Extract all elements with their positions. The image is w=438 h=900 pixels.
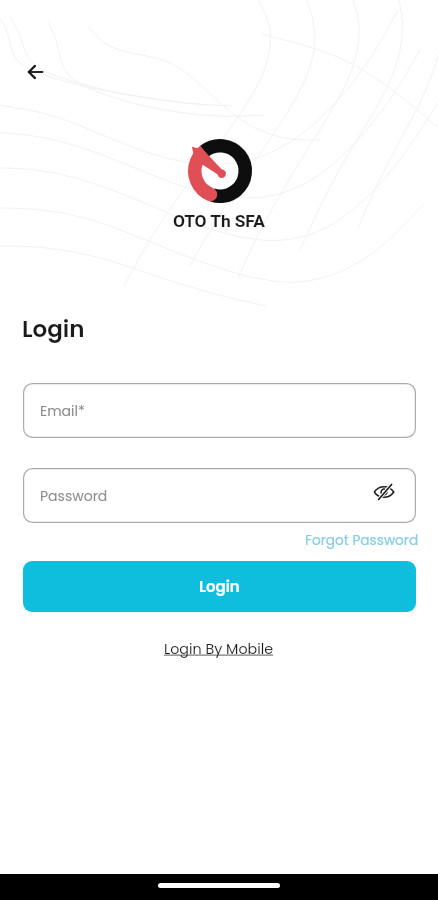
staticText: OTO Th SFA [173,211,265,231]
staticText: Login [22,313,85,345]
button[interactable]: Forgot Password [305,531,419,550]
button[interactable]: Password [23,468,416,523]
staticText: Login [199,576,240,597]
button[interactable]: Show password [371,479,397,505]
staticText: Email* [40,401,85,421]
button[interactable]: Login By Mobile [164,639,274,659]
button[interactable]: Login [23,561,416,612]
staticText: Password [40,486,108,506]
button[interactable]: Email* [23,383,416,438]
staticText: Login By Mobile [164,639,274,659]
button[interactable]: Back [18,54,53,89]
staticText: Forgot Password [305,531,419,550]
